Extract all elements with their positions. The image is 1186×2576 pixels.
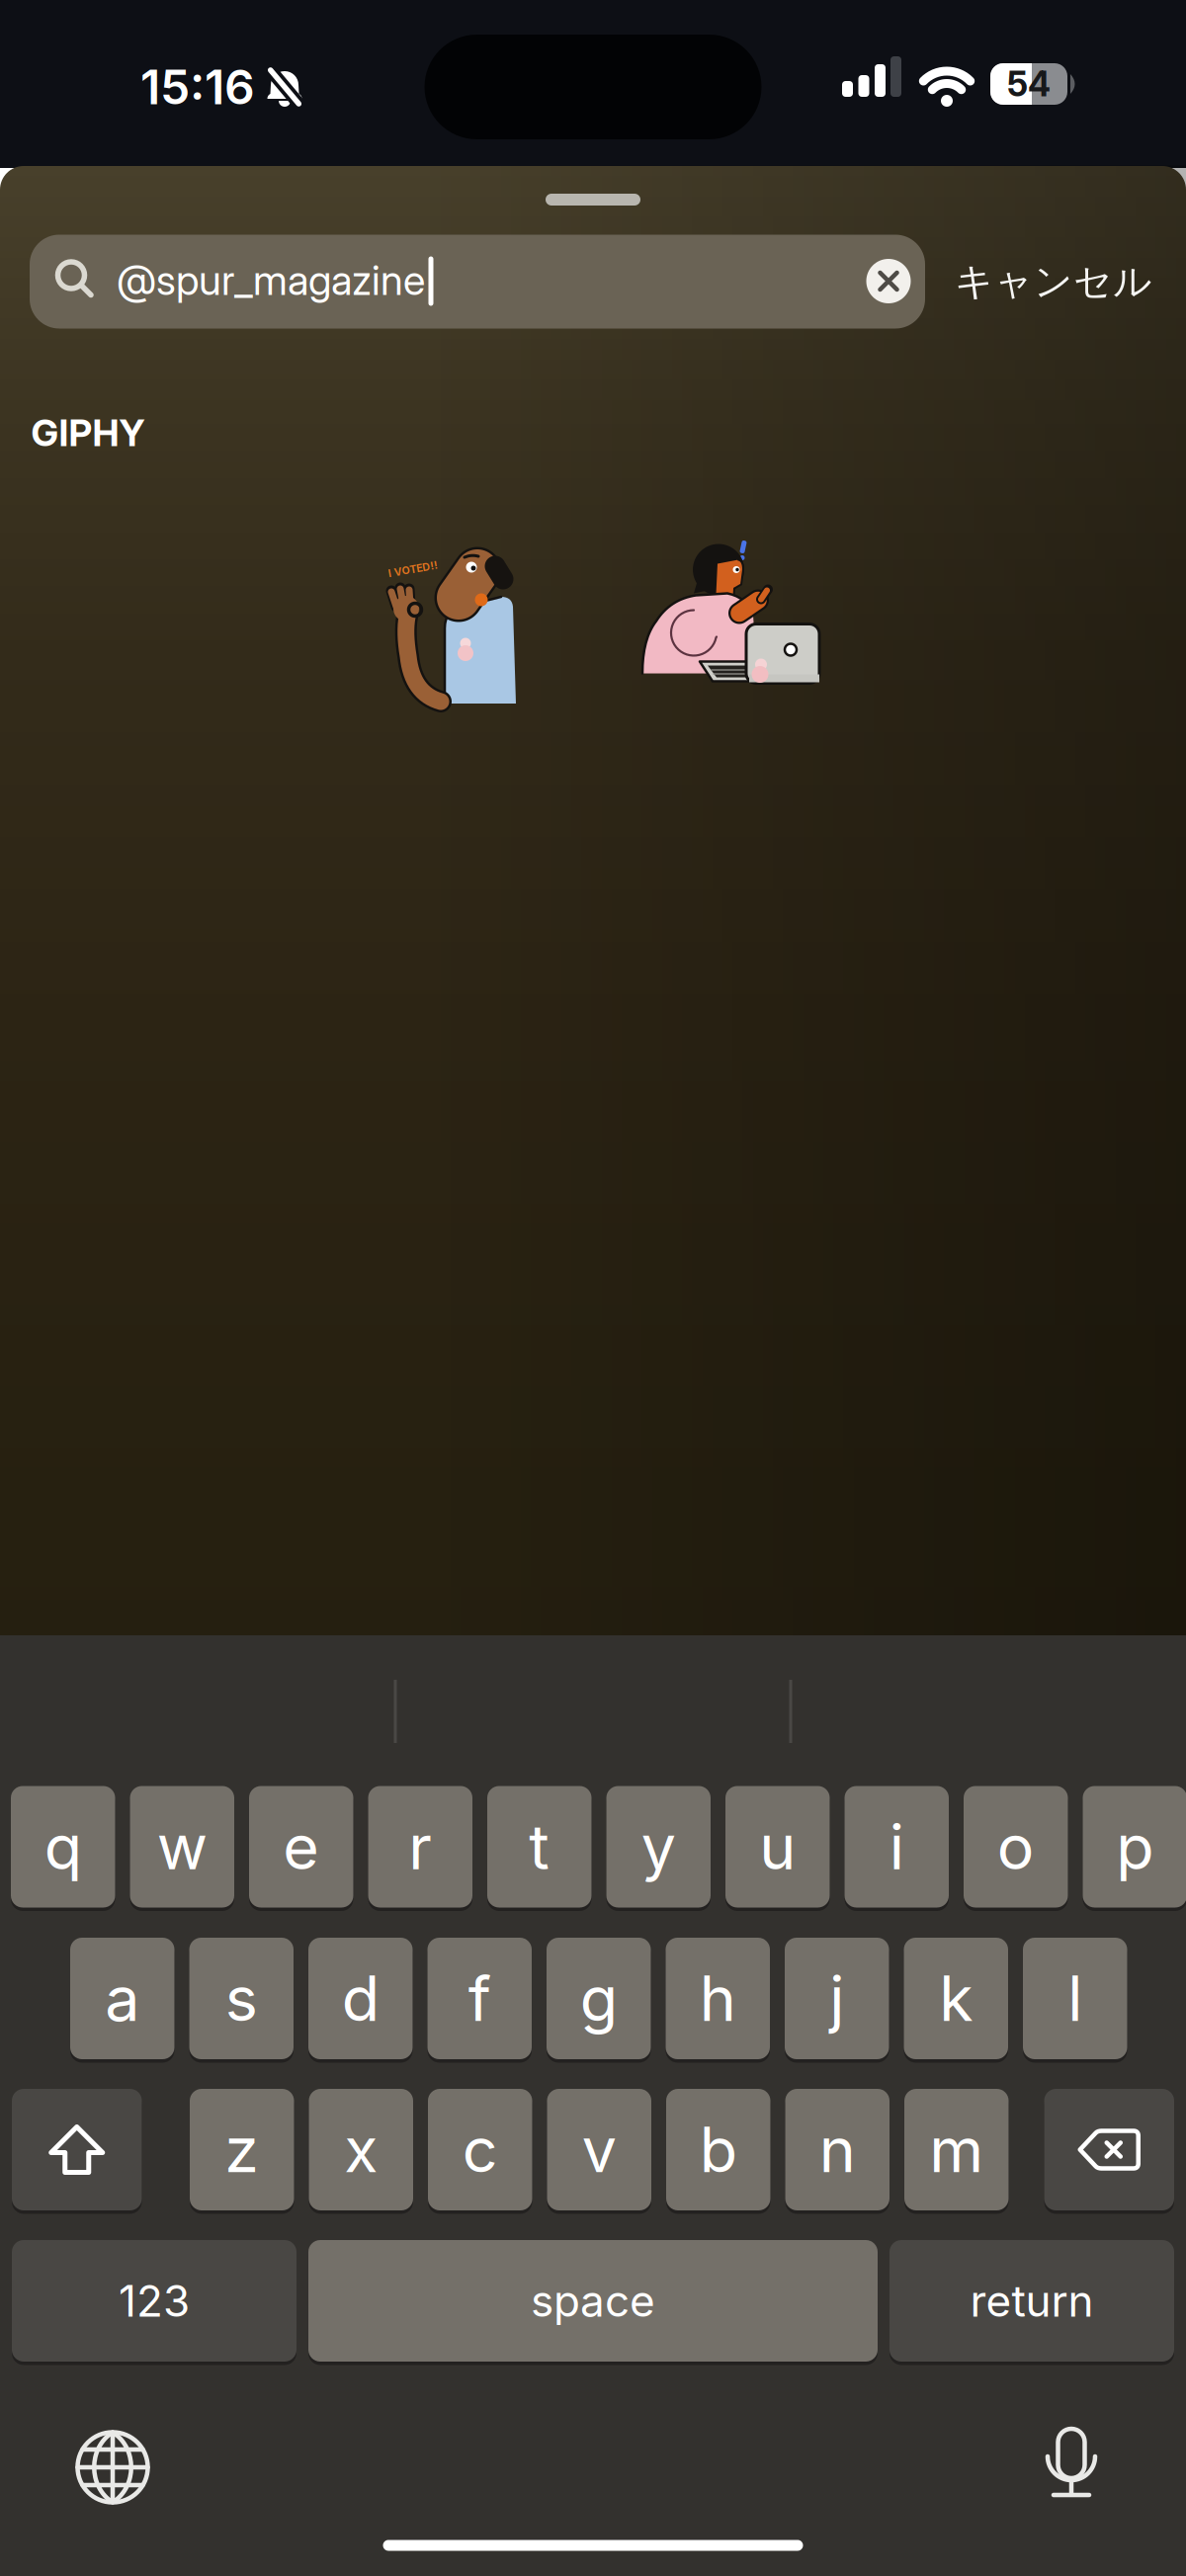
button[interactable]: d xyxy=(308,1938,413,2059)
button[interactable]: c xyxy=(428,2089,532,2210)
staticText: i xyxy=(889,1810,904,1883)
button[interactable]: h xyxy=(666,1938,770,2059)
staticText: x xyxy=(344,2113,378,2186)
button[interactable]: I voted dog sticker xyxy=(382,545,517,704)
button[interactable]: 123 xyxy=(12,2240,296,2362)
staticText: GIPHY xyxy=(31,411,145,455)
button[interactable]: k xyxy=(904,1938,1008,2059)
staticText: q xyxy=(44,1810,82,1883)
button[interactable]: q xyxy=(11,1786,115,1908)
button[interactable]: Dictation xyxy=(1032,2426,1111,2501)
staticText: f xyxy=(468,1962,491,2035)
staticText: j xyxy=(829,1962,844,2035)
button[interactable]: キャンセル xyxy=(955,258,1152,305)
button[interactable]: s xyxy=(189,1938,294,2059)
button[interactable]: j xyxy=(785,1938,889,2059)
button[interactable]: f xyxy=(427,1938,532,2059)
button[interactable]: z xyxy=(190,2089,294,2210)
button[interactable]: w xyxy=(130,1786,234,1908)
button[interactable]: l xyxy=(1023,1938,1127,2059)
button[interactable]: i xyxy=(845,1786,949,1908)
staticText: c xyxy=(462,2113,498,2186)
staticText: @spur_magazine xyxy=(117,256,425,304)
button[interactable]: @spur_magazine xyxy=(30,235,925,329)
button[interactable]: space xyxy=(308,2240,878,2362)
button[interactable]: Working at laptop sticker xyxy=(640,538,820,701)
button[interactable]: v xyxy=(547,2089,651,2210)
button[interactable]: g xyxy=(547,1938,651,2059)
staticText: u xyxy=(759,1810,796,1883)
button[interactable]: x xyxy=(309,2089,413,2210)
button[interactable]: y xyxy=(606,1786,711,1908)
staticText: d xyxy=(342,1962,379,2035)
button[interactable]: b xyxy=(666,2089,770,2210)
button[interactable]: Clear text xyxy=(866,259,911,303)
staticText: 54 xyxy=(1007,64,1051,104)
staticText: r xyxy=(408,1810,432,1883)
staticText: キャンセル xyxy=(955,258,1152,305)
button[interactable]: Next keyboard xyxy=(73,2428,152,2507)
button[interactable]: p xyxy=(1083,1786,1186,1908)
staticText: return xyxy=(970,2275,1094,2326)
button[interactable]: e xyxy=(249,1786,353,1908)
staticText: b xyxy=(700,2113,737,2186)
staticText: p xyxy=(1116,1810,1154,1883)
button[interactable]: m xyxy=(904,2089,1009,2210)
staticText: a xyxy=(105,1962,140,2035)
staticText: w xyxy=(157,1810,207,1883)
staticText: s xyxy=(225,1962,258,2035)
staticText: k xyxy=(939,1962,973,2035)
button[interactable]: r xyxy=(368,1786,472,1908)
staticText: o xyxy=(997,1810,1035,1883)
staticText: g xyxy=(580,1962,618,2035)
button[interactable]: Delete xyxy=(1044,2089,1174,2210)
staticText: m xyxy=(929,2113,984,2186)
button[interactable]: a xyxy=(70,1938,174,2059)
staticText: l xyxy=(1068,1962,1082,2035)
button[interactable]: o xyxy=(964,1786,1068,1908)
staticText: h xyxy=(700,1962,736,2035)
staticText: n xyxy=(819,2113,856,2186)
button[interactable]: n xyxy=(785,2089,889,2210)
staticText: v xyxy=(582,2113,617,2186)
staticText: t xyxy=(529,1810,550,1883)
button[interactable]: Shift xyxy=(12,2089,142,2210)
staticText: space xyxy=(531,2275,655,2326)
staticText: 15:16 xyxy=(140,59,255,115)
button[interactable]: u xyxy=(725,1786,830,1908)
button[interactable]: t xyxy=(487,1786,592,1908)
button[interactable]: return xyxy=(889,2240,1174,2362)
staticText: I VOTED!! xyxy=(388,563,438,575)
staticText: e xyxy=(283,1810,319,1883)
staticText: 123 xyxy=(119,2275,190,2326)
staticText: y xyxy=(641,1810,676,1883)
staticText: z xyxy=(225,2113,259,2186)
